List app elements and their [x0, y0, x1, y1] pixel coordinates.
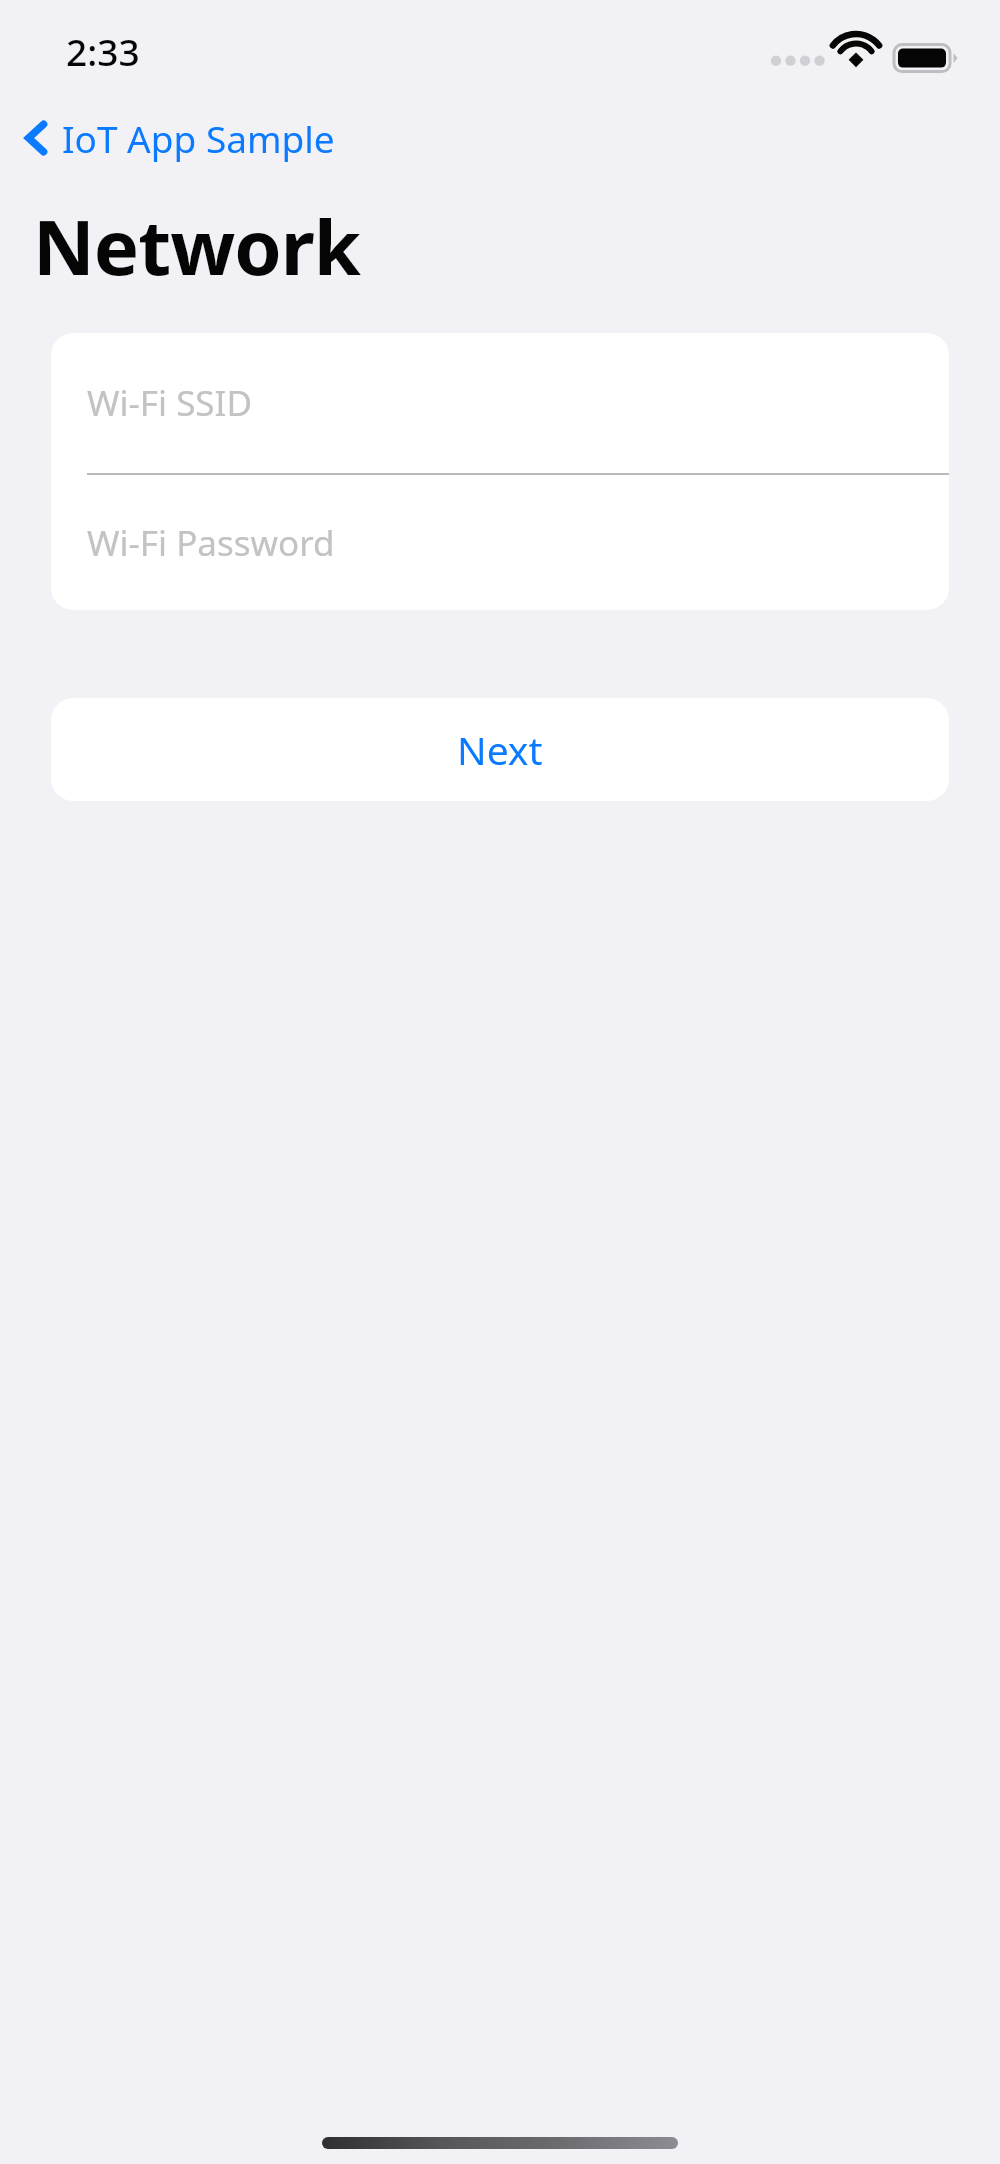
button[interactable]: Wi-Fi SSID	[51, 333, 949, 473]
staticText: IoT App Sample	[62, 113, 335, 163]
staticText: Wi-Fi SSID	[87, 379, 252, 427]
staticText: Wi-Fi Password	[87, 519, 335, 567]
button[interactable]: IoT App Sample	[14, 108, 343, 168]
button[interactable]: Wi-Fi Password	[51, 475, 949, 610]
staticText: 2:33	[66, 26, 140, 76]
button[interactable]: Next	[51, 698, 949, 801]
staticText: Network	[33, 194, 360, 298]
staticText: Next	[457, 723, 543, 776]
